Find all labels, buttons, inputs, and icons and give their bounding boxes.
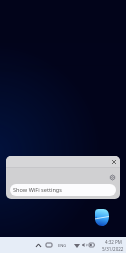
button[interactable]: Show WiFi settings	[10, 184, 116, 196]
button[interactable]: Touch keyboard	[44, 237, 53, 253]
button[interactable]: Volume	[80, 237, 89, 253]
button[interactable]: Settings	[107, 172, 117, 182]
staticText: 4:32 PM	[105, 239, 122, 245]
button[interactable]: Battery	[87, 237, 96, 253]
staticText: 5/31/2022	[102, 246, 124, 252]
staticText: ENG	[58, 243, 67, 248]
button[interactable]: ENG	[57, 237, 67, 253]
button[interactable]: Close	[109, 157, 119, 167]
button[interactable]: Network	[72, 237, 81, 253]
button[interactable]: Security app	[95, 209, 109, 226]
staticText: Show WiFi settings	[13, 186, 62, 194]
button[interactable]: 4:32 PM	[102, 237, 124, 253]
button[interactable]: Show hidden icons	[34, 237, 43, 253]
